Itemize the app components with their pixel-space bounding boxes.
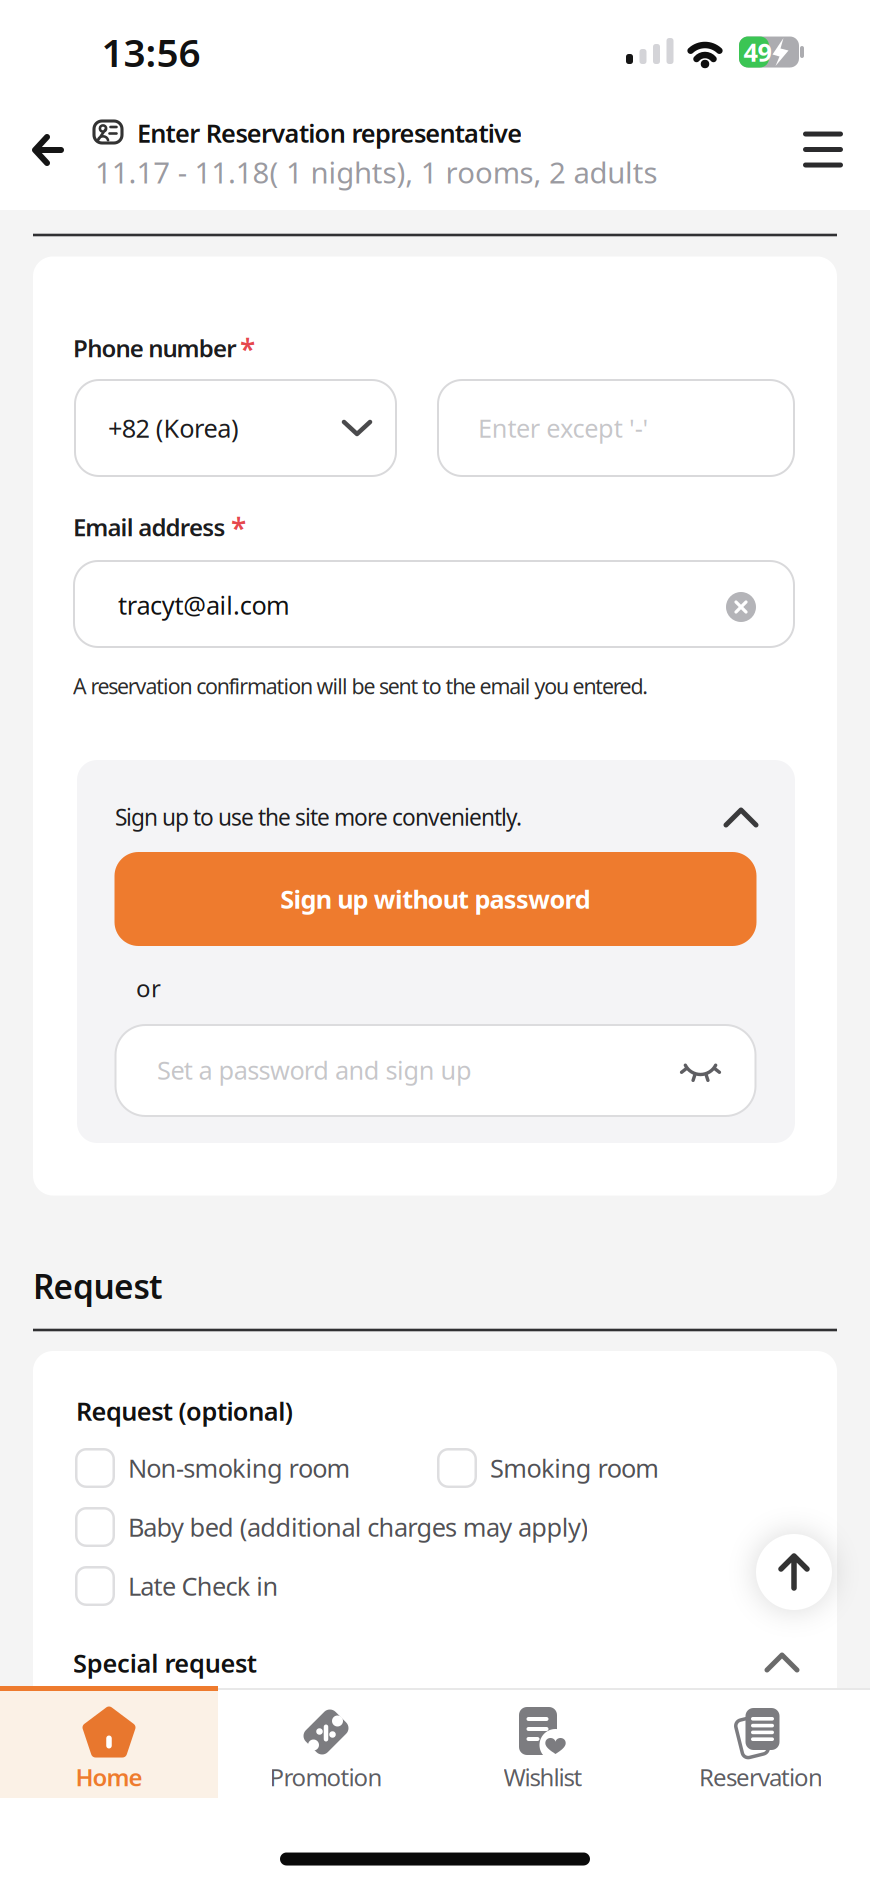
staticText: +82 (Korea) xyxy=(108,411,239,445)
button[interactable]: Clear email xyxy=(719,585,763,629)
staticText: 49 xyxy=(743,35,771,69)
button[interactable]: Set a password and sign up xyxy=(114,1024,756,1117)
button[interactable]: Country code +82 Korea xyxy=(74,379,397,477)
staticText: Home xyxy=(75,1761,142,1793)
button[interactable]: Promotion xyxy=(217,1685,434,1809)
button[interactable]: Scroll to top xyxy=(756,1534,832,1610)
button[interactable]: Late Check in xyxy=(75,1563,345,1609)
staticText: Request (optional) xyxy=(76,1394,293,1428)
staticText: Reservation xyxy=(699,1761,823,1793)
button[interactable]: Smoking room xyxy=(437,1445,727,1491)
button[interactable]: Sign up without password xyxy=(114,852,756,946)
staticText: Email address xyxy=(73,511,225,543)
staticText: tracyt@ail.com xyxy=(118,588,290,622)
staticText: Baby bed (additional charges may apply) xyxy=(128,1510,588,1544)
button[interactable]: Collapse xyxy=(719,796,763,840)
staticText: Sign up to use the site more convenientl… xyxy=(115,802,522,832)
staticText: Non-smoking room xyxy=(128,1451,350,1485)
staticText: * xyxy=(240,330,255,368)
button[interactable]: Baby bed (additional charges may apply) xyxy=(75,1504,635,1550)
button[interactable]: Back xyxy=(27,136,69,164)
staticText: Late Check in xyxy=(128,1569,279,1603)
button[interactable]: Menu xyxy=(795,121,851,177)
button[interactable]: Reservation xyxy=(652,1685,869,1809)
staticText: Smoking room xyxy=(490,1451,659,1485)
staticText: * xyxy=(231,509,246,547)
button[interactable]: Home xyxy=(0,1685,217,1809)
button[interactable]: tracyt@ail.com xyxy=(73,560,795,648)
staticText: Sign up without password xyxy=(280,882,591,916)
button[interactable]: Collapse special request xyxy=(760,1641,804,1685)
staticText: A reservation confirmation will be sent … xyxy=(73,672,648,700)
button[interactable]: Non-smoking room xyxy=(75,1445,405,1491)
staticText: Special request xyxy=(73,1646,257,1680)
staticText: Request xyxy=(33,1264,163,1308)
staticText: Promotion xyxy=(269,1761,382,1793)
staticText: Enter except '-' xyxy=(478,411,648,445)
staticText: Enter Reservation representative xyxy=(137,116,522,150)
button[interactable]: Phone number xyxy=(437,379,795,477)
staticText: Set a password and sign up xyxy=(157,1053,472,1087)
staticText: Phone number xyxy=(73,332,236,364)
staticText: 13:56 xyxy=(101,26,200,78)
button[interactable]: Show password xyxy=(673,1045,727,1095)
staticText: Wishlist xyxy=(503,1761,582,1793)
button[interactable]: Wishlist xyxy=(434,1685,651,1809)
staticText: 11.17 - 11.18( 1 nights), 1 rooms, 2 adu… xyxy=(95,152,658,191)
staticText: or xyxy=(136,972,161,1004)
